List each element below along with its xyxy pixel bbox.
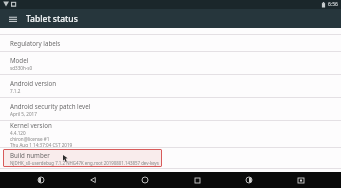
staticText: Build number (10, 151, 50, 159)
staticText: Regulatory labels (10, 39, 61, 47)
staticText: Tablet status (26, 13, 78, 25)
staticText: 4.4.120 (10, 130, 26, 136)
staticText: Android security patch level (10, 102, 91, 110)
staticText: Thu Aug 1 14:37:04 CST 2019 (10, 142, 73, 147)
button[interactable]: Build number (3, 149, 162, 167)
button[interactable]: Home (138, 173, 152, 187)
button[interactable]: Kernel version (0, 121, 341, 147)
button[interactable]: Model (0, 52, 341, 74)
staticText: NJDHK_s0-userdebug 7.1.2 NHG47K eng.root… (10, 160, 159, 166)
staticText: Model (10, 56, 29, 64)
staticText: sd330h-s0 (10, 65, 33, 71)
button[interactable]: Regulatory labels (0, 35, 341, 51)
button[interactable]: Brightness (34, 173, 48, 187)
button[interactable]: Night mode (242, 173, 256, 187)
staticText: 7.1.2 (10, 88, 21, 94)
button[interactable]: Screenshot (294, 173, 308, 187)
staticText: 6:56 (328, 1, 338, 8)
button[interactable]: Back (86, 173, 100, 187)
staticText: April 5, 2017 (10, 111, 37, 117)
button[interactable]: Open navigation menu (6, 12, 20, 26)
staticText: chiron@license #1 (10, 136, 50, 142)
button[interactable]: Recent apps (190, 173, 204, 187)
staticText: Android version (10, 79, 57, 87)
button[interactable]: Android security patch level (0, 98, 341, 120)
button[interactable]: Android version (0, 75, 341, 97)
staticText: Kernel version (10, 121, 52, 129)
